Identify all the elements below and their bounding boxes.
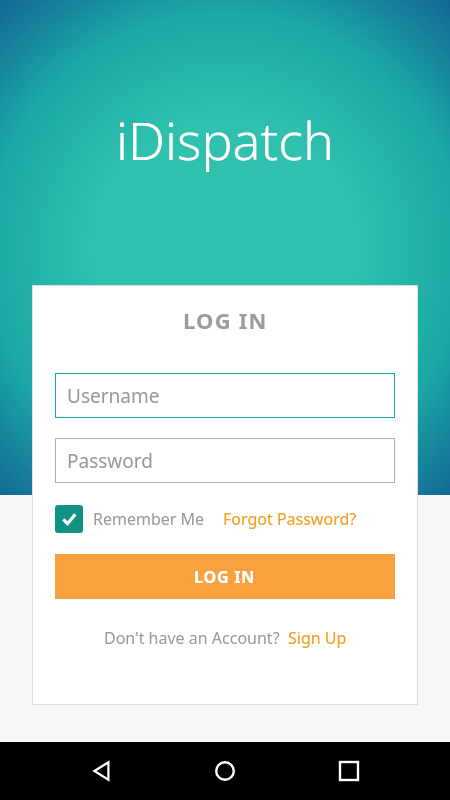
button[interactable]: Password <box>55 438 395 483</box>
button[interactable]: Home <box>203 749 247 793</box>
staticText: iDispatch <box>116 104 334 175</box>
staticText: Username <box>67 383 160 409</box>
staticText: Don't have an Account? <box>104 627 280 649</box>
button[interactable]: Username <box>55 373 395 418</box>
button[interactable]: Forgot Password? <box>223 508 357 530</box>
staticText: Sign Up <box>288 627 347 649</box>
staticText: Remember Me <box>93 508 205 530</box>
button[interactable]: Sign Up <box>288 627 347 649</box>
staticText: LOG IN <box>194 566 256 588</box>
button[interactable]: Recent apps <box>327 749 371 793</box>
staticText: Forgot Password? <box>223 508 357 530</box>
staticText: Password <box>67 448 153 474</box>
button[interactable]: Remember Me <box>55 505 205 533</box>
staticText: LOG IN <box>183 305 268 335</box>
button[interactable]: LOG IN <box>55 554 395 599</box>
button[interactable]: Back <box>80 749 124 793</box>
